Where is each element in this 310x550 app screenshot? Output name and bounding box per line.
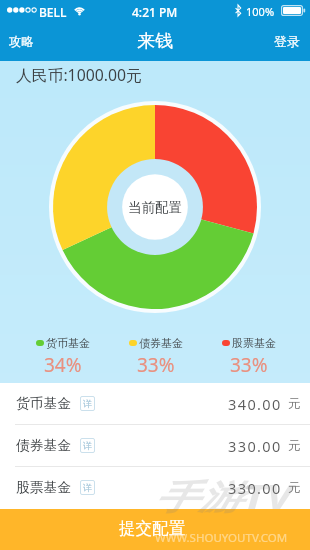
staticText: 提交配置	[119, 518, 185, 539]
staticText: 股票基金	[16, 479, 72, 496]
button[interactable]: 详情	[80, 396, 95, 411]
staticText: 33%	[230, 352, 268, 378]
button[interactable]: 股票基金	[0, 467, 310, 508]
button[interactable]: 攻略	[0, 22, 60, 61]
staticText: 340.00	[228, 394, 282, 414]
staticText: 攻略	[9, 34, 34, 50]
staticText: 元	[288, 480, 301, 496]
staticText: 元	[288, 438, 301, 454]
button[interactable]: 详情	[80, 438, 95, 453]
staticText: 货币基金	[46, 336, 90, 350]
staticText: 详	[83, 398, 92, 409]
staticText: 债券基金	[139, 336, 183, 350]
button[interactable]: 债券基金	[0, 425, 310, 466]
staticText: 330.00	[228, 478, 282, 498]
staticText: 4:21 PM	[132, 4, 178, 20]
staticText: 债券基金	[16, 437, 72, 454]
button[interactable]: 登录	[250, 22, 310, 61]
staticText: WWW.SHOUYOUTV.COM	[155, 530, 288, 546]
staticText: 详	[83, 482, 92, 493]
button[interactable]: 提交配置	[0, 509, 310, 550]
staticText: 详	[83, 440, 92, 451]
staticText: 手游TV	[154, 473, 293, 519]
staticText: 当前配置	[128, 199, 182, 216]
button[interactable]: 详情	[80, 480, 95, 495]
button[interactable]: 货币基金	[0, 383, 310, 424]
staticText: 股票基金	[232, 336, 276, 350]
staticText: 33%	[137, 352, 175, 378]
staticText: 34%	[44, 352, 82, 378]
staticText: 登录	[274, 34, 300, 50]
staticText: 人民币:1000.00元	[16, 64, 142, 86]
staticText: BELL	[39, 4, 67, 20]
staticText: 元	[288, 396, 301, 412]
staticText: 330.00	[228, 436, 282, 456]
staticText: 货币基金	[16, 395, 72, 412]
staticText: 来钱	[137, 30, 173, 53]
staticText: 100%	[246, 4, 275, 19]
